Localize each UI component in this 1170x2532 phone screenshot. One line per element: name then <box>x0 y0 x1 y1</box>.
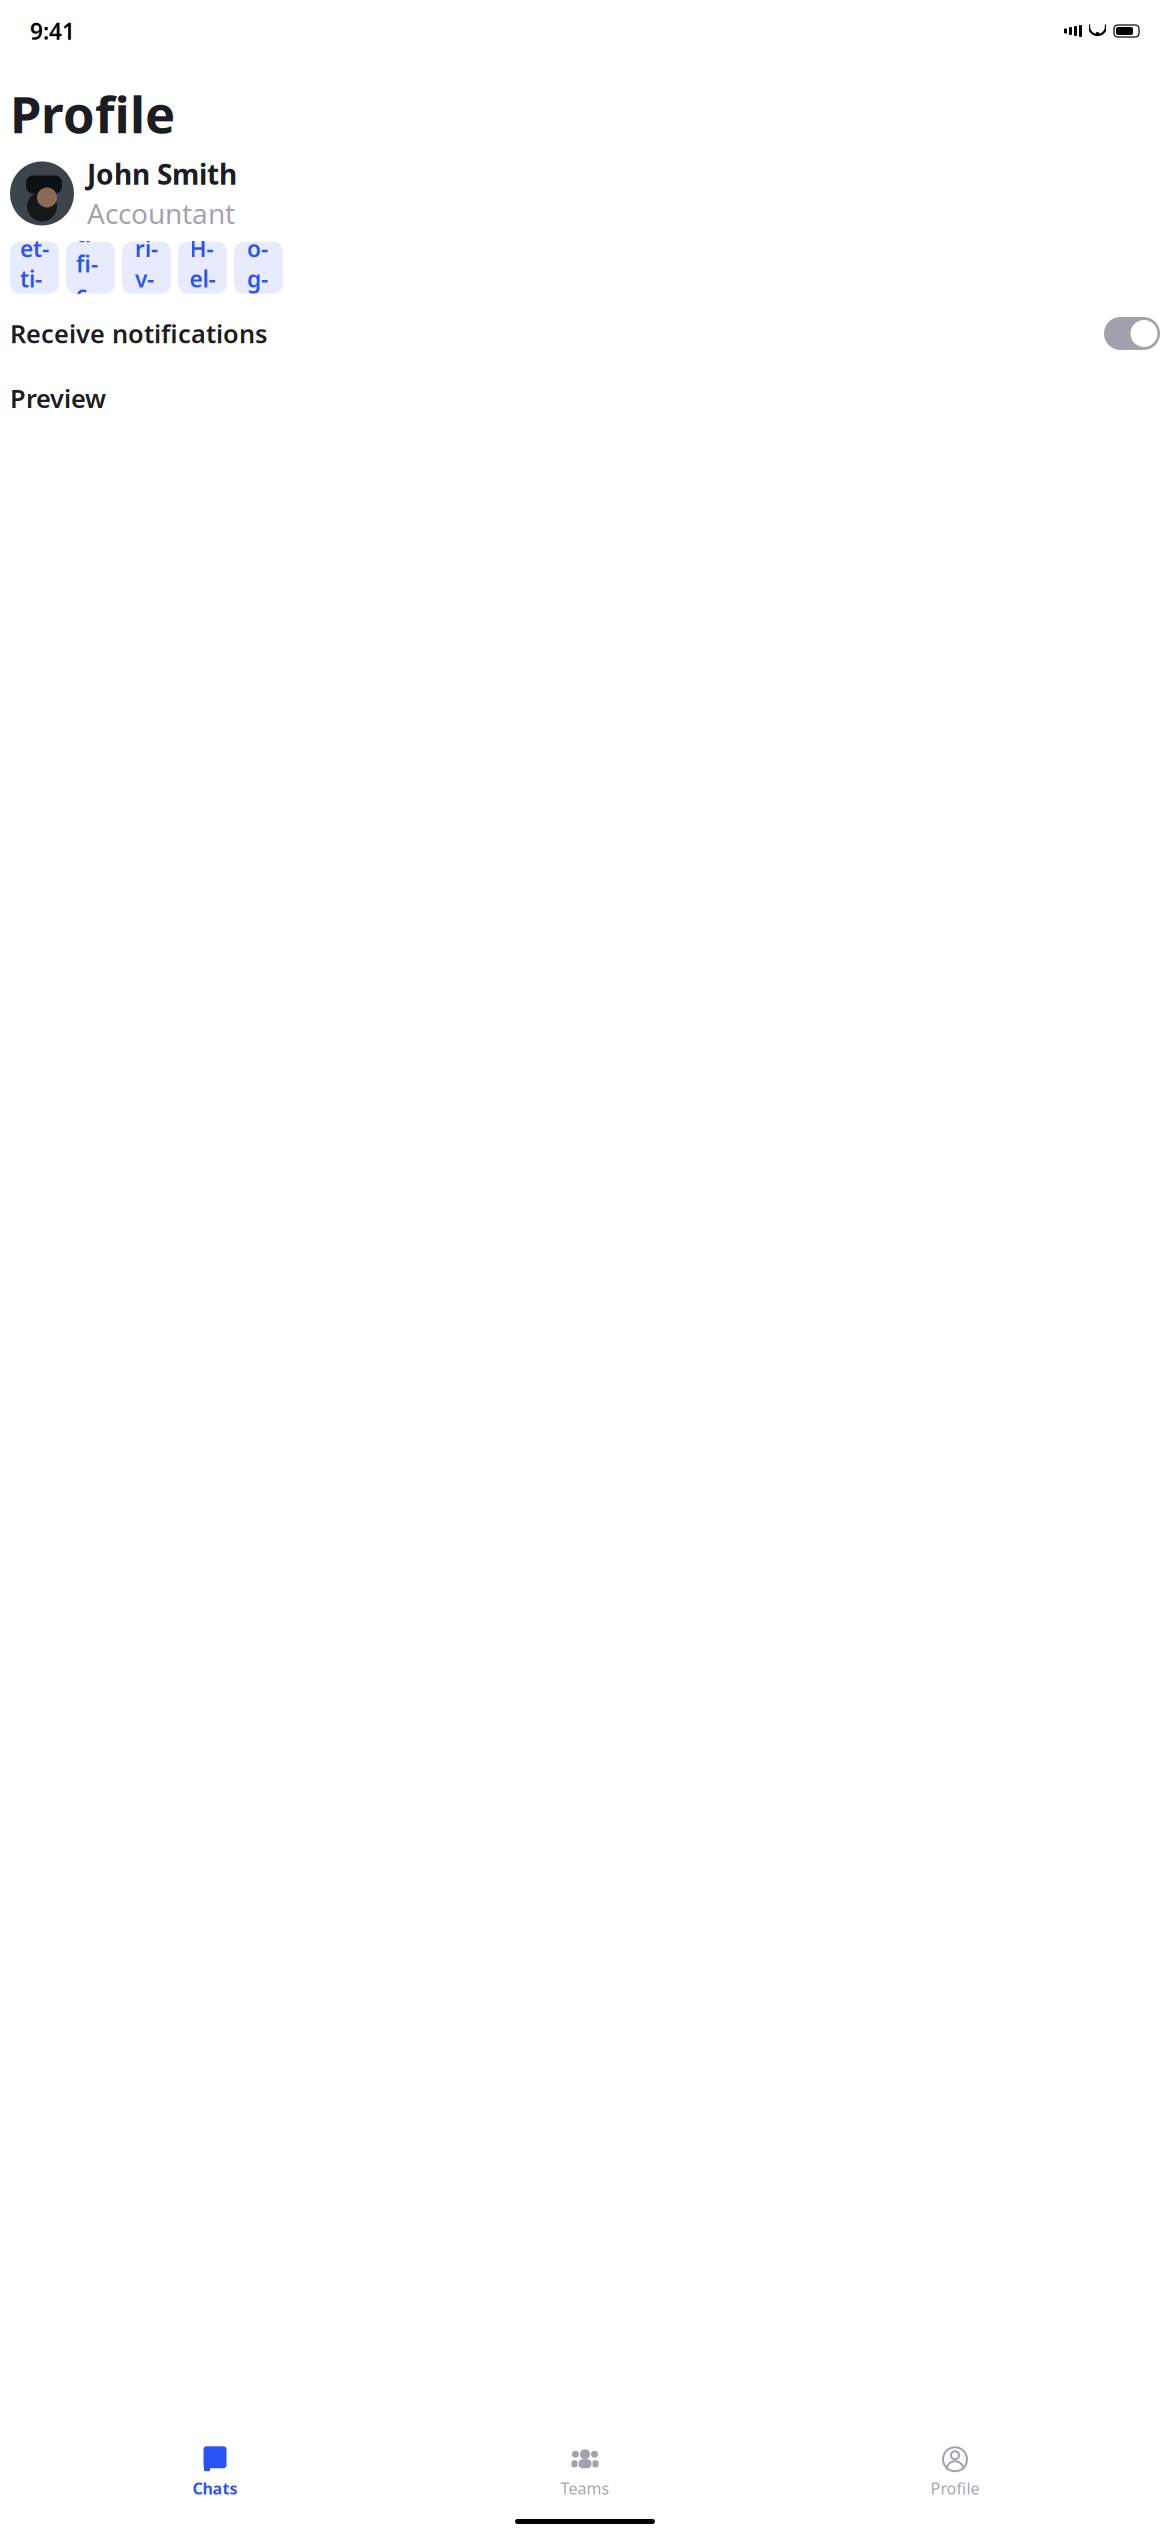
staticText: Notifications <box>76 158 105 399</box>
button[interactable]: Privacy <box>122 242 171 294</box>
staticText: Profile <box>10 80 175 147</box>
button[interactable]: Teams <box>400 2442 770 2503</box>
staticText: Profile <box>930 2478 979 2499</box>
button[interactable]: Settings <box>10 242 59 294</box>
button[interactable]: ? <box>178 242 227 294</box>
staticText: Accountant <box>87 194 235 232</box>
staticText: Settings <box>20 203 49 354</box>
staticText: Privacy <box>135 203 158 354</box>
staticText: ? <box>197 209 207 236</box>
staticText: Preview <box>10 381 106 415</box>
button[interactable]: Notifications <box>66 242 115 294</box>
button[interactable]: Chats <box>30 2442 400 2503</box>
button[interactable]: Profile <box>770 2442 1140 2503</box>
staticText: Help <box>189 233 215 324</box>
staticText: 9:41 <box>30 16 75 46</box>
staticText: Chats <box>192 2478 237 2499</box>
staticText: Receive notifications <box>10 317 267 350</box>
button[interactable]: Receive notifications <box>1104 317 1160 350</box>
staticText: John Smith <box>87 155 237 192</box>
staticText: Logout <box>247 203 270 354</box>
staticText: Teams <box>560 2478 609 2499</box>
button[interactable]: Logout <box>234 242 283 294</box>
